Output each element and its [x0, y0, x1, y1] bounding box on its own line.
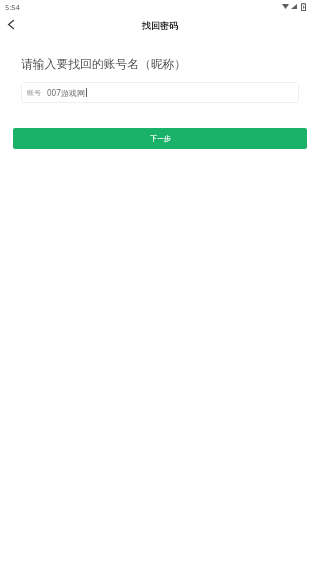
- staticText: 找回密码: [142, 20, 178, 31]
- staticText: 下一步: [150, 134, 171, 143]
- button[interactable]: Back: [1, 16, 21, 32]
- staticText: 007游戏网: [47, 87, 85, 98]
- staticText: 账号: [27, 88, 41, 97]
- staticText: 5:54: [5, 2, 20, 12]
- button[interactable]: 下一步: [13, 128, 307, 149]
- staticText: 请输入要找回的账号名（昵称）: [21, 57, 187, 72]
- button[interactable]: 账号: [21, 82, 299, 103]
